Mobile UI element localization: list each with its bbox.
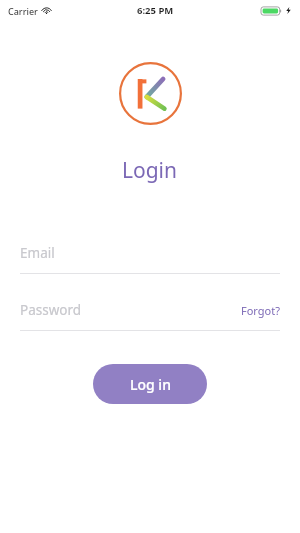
staticText: Log in (130, 375, 171, 394)
button[interactable]: Forgot? (241, 303, 280, 318)
button[interactable]: Email (20, 242, 280, 274)
staticText: Forgot? (241, 303, 280, 318)
button[interactable]: Log in (93, 364, 207, 404)
staticText: Email (20, 244, 55, 262)
staticText: Login (122, 156, 178, 185)
staticText: Password (20, 301, 82, 319)
button[interactable]: Password (20, 299, 280, 331)
staticText: 6:25 PM (137, 4, 174, 17)
staticText: Carrier (8, 5, 38, 17)
